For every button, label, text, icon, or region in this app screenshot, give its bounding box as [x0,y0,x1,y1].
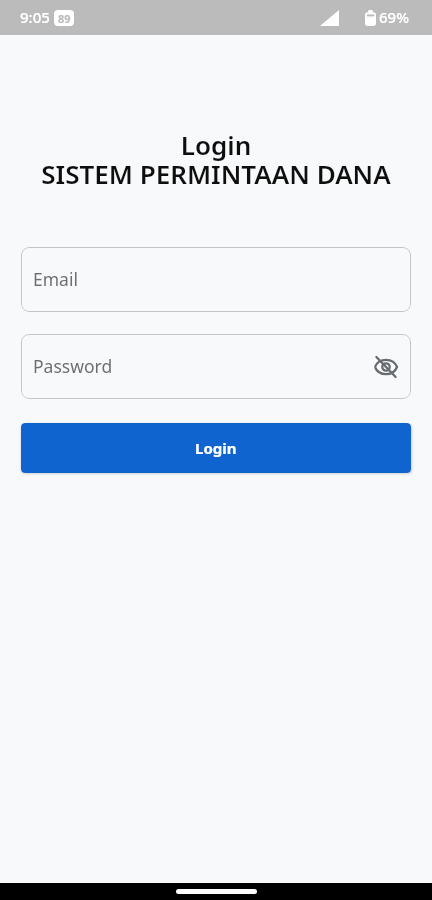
staticText: Password [33,354,113,378]
button[interactable]: Login [21,423,411,473]
button[interactable]: Password [21,334,411,399]
staticText: Login [195,438,237,458]
staticText: Login [0,127,432,162]
staticText: Email [33,267,78,291]
staticText: 89 [58,11,71,26]
button[interactable]: Show password [370,351,402,383]
staticText: 9:05 [20,7,50,27]
other: Mobile signal [320,10,339,26]
other: Home [176,889,257,894]
staticText: SISTEM PERMINTAAN DANA [0,156,432,191]
other: Battery 69 percent [365,10,376,26]
staticText: 69% [379,7,409,27]
button[interactable]: Email [21,247,411,312]
